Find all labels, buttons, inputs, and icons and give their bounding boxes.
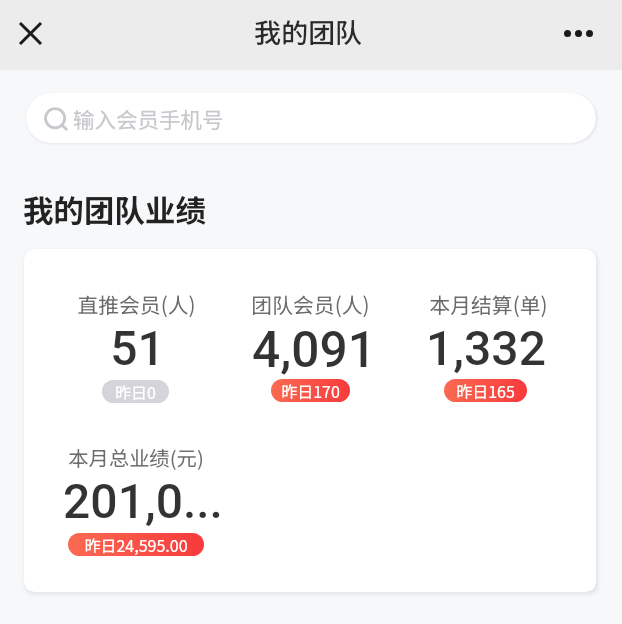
staticText: 本月结算(单) [429,289,548,319]
staticText: 团队会员(人) [251,289,370,319]
staticText: 昨日0 [115,380,156,403]
staticText: 输入会员手机号 [73,103,224,134]
staticText: 51 [110,320,165,376]
button[interactable]: More options [554,9,602,57]
staticText: 我的团队业绩 [23,187,206,231]
staticText: 本月总业绩(元) [68,442,204,471]
button[interactable]: Close [6,9,54,57]
staticText: 201,0... [63,473,223,529]
staticText: 我的团队 [254,12,362,51]
staticText: 直推会员(人) [77,289,196,319]
button[interactable]: 输入会员手机号 [26,93,596,143]
staticText: 昨日165 [456,379,515,402]
staticText: 昨日170 [281,379,340,402]
staticText: 4,091 [252,321,376,379]
staticText: 1,332 [426,320,546,376]
staticText: 昨日24,595.00 [84,533,188,556]
